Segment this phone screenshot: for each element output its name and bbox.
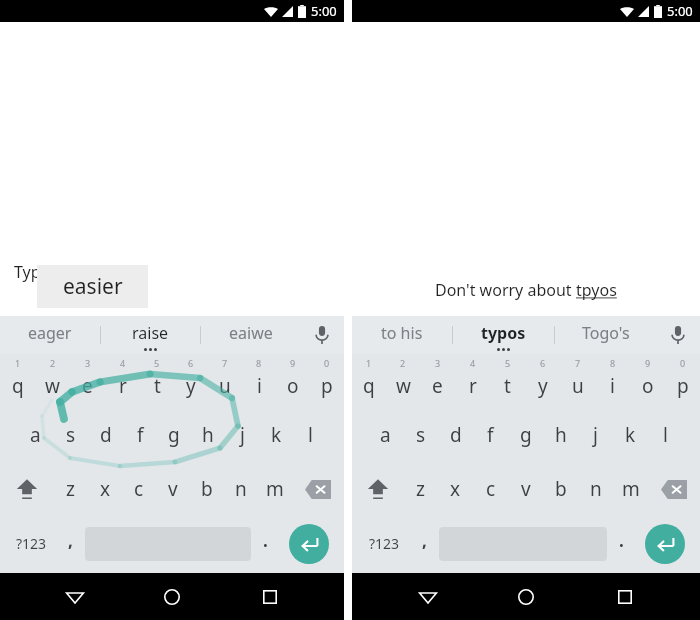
staticText: 2 xyxy=(400,357,406,369)
staticText: raise xyxy=(132,322,169,344)
staticText: j xyxy=(593,422,598,448)
button[interactable]: Delete xyxy=(292,462,344,516)
button[interactable]: , xyxy=(56,516,85,571)
button[interactable]: a xyxy=(18,408,53,462)
button[interactable]: 2 xyxy=(386,354,420,408)
button[interactable]: n xyxy=(224,462,258,516)
staticText: d xyxy=(450,422,462,448)
button[interactable]: 8 xyxy=(242,354,276,408)
staticText: eager xyxy=(28,322,72,344)
staticText: a xyxy=(380,422,391,448)
button[interactable]: c xyxy=(122,462,156,516)
staticText: p xyxy=(677,373,689,399)
button[interactable]: z xyxy=(53,462,88,516)
button[interactable]: l xyxy=(293,408,327,462)
button[interactable]: 1 xyxy=(0,354,35,408)
button[interactable]: Voice input xyxy=(300,316,344,354)
button[interactable]: Shift xyxy=(0,462,53,516)
button[interactable]: Home xyxy=(503,574,549,620)
button[interactable]: c xyxy=(473,462,508,516)
staticText: easier xyxy=(63,272,123,301)
button[interactable]: a xyxy=(368,408,403,462)
button[interactable]: 7 xyxy=(208,354,242,408)
button[interactable]: Recents xyxy=(247,574,293,620)
button[interactable]: f xyxy=(473,408,508,462)
button[interactable]: 4 xyxy=(105,354,140,408)
button[interactable]: raise xyxy=(101,316,200,354)
button[interactable]: v xyxy=(156,462,190,516)
button[interactable]: 3 xyxy=(70,354,105,408)
button[interactable]: x xyxy=(88,462,122,516)
button[interactable]: Togo's xyxy=(555,316,656,354)
staticText: f xyxy=(487,422,494,448)
button[interactable]: to his xyxy=(352,316,452,354)
button[interactable]: 4 xyxy=(455,354,490,408)
button[interactable]: 2 xyxy=(35,354,70,408)
button[interactable]: 1 xyxy=(352,354,386,408)
button[interactable]: s xyxy=(53,408,88,462)
staticText: h xyxy=(555,422,567,448)
button[interactable]: n xyxy=(578,462,613,516)
button[interactable]: 0 xyxy=(665,354,700,408)
button[interactable]: Back xyxy=(52,574,98,620)
button[interactable]: l xyxy=(648,408,683,462)
button[interactable]: z xyxy=(403,462,438,516)
button[interactable]: typos xyxy=(453,316,554,354)
button[interactable]: 6 xyxy=(174,354,208,408)
staticText: 6 xyxy=(540,357,546,369)
button[interactable]: m xyxy=(258,462,292,516)
button[interactable]: x xyxy=(438,462,473,516)
button[interactable]: g xyxy=(508,408,543,462)
button[interactable]: 9 xyxy=(276,354,310,408)
staticText: b xyxy=(555,476,567,502)
button[interactable]: Enter xyxy=(645,524,685,564)
button[interactable]: 5 xyxy=(490,354,525,408)
button[interactable]: d xyxy=(88,408,123,462)
staticText: u xyxy=(219,373,231,399)
button[interactable]: g xyxy=(157,408,191,462)
button[interactable]: ?123 xyxy=(358,516,410,571)
button[interactable]: , xyxy=(410,516,439,571)
button[interactable]: Home xyxy=(149,574,195,620)
button[interactable]: k xyxy=(259,408,293,462)
button[interactable]: j xyxy=(578,408,613,462)
button[interactable]: m xyxy=(613,462,648,516)
staticText: k xyxy=(625,422,636,448)
staticText: Togo's xyxy=(582,322,630,344)
staticText: l xyxy=(663,422,668,448)
button[interactable]: Back xyxy=(405,574,451,620)
button[interactable]: Enter xyxy=(289,524,329,564)
button[interactable]: h xyxy=(191,408,225,462)
button[interactable]: . xyxy=(607,516,636,571)
button[interactable]: s xyxy=(403,408,438,462)
button[interactable]: Shift xyxy=(352,462,403,516)
button[interactable]: k xyxy=(613,408,648,462)
button[interactable]: 8 xyxy=(595,354,630,408)
button[interactable]: 0 xyxy=(310,354,344,408)
button[interactable]: eaiwe xyxy=(201,316,300,354)
button[interactable]: Voice input xyxy=(656,316,700,354)
staticText: t xyxy=(504,373,511,399)
button[interactable]: j xyxy=(225,408,259,462)
button[interactable]: eager xyxy=(0,316,100,354)
button[interactable]: 6 xyxy=(525,354,560,408)
button[interactable]: h xyxy=(543,408,578,462)
button[interactable]: 9 xyxy=(630,354,665,408)
button[interactable]: 7 xyxy=(560,354,595,408)
button[interactable]: b xyxy=(543,462,578,516)
button[interactable]: 5 xyxy=(140,354,174,408)
button[interactable]: Recents xyxy=(602,574,648,620)
button[interactable]: v xyxy=(508,462,543,516)
button[interactable]: b xyxy=(190,462,224,516)
button[interactable]: . xyxy=(251,516,280,571)
button[interactable]: d xyxy=(438,408,473,462)
button[interactable]: f xyxy=(123,408,157,462)
button[interactable]: ?123 xyxy=(6,516,56,571)
staticText: Typing is xyxy=(14,261,81,283)
button[interactable]: 3 xyxy=(420,354,455,408)
button[interactable]: Delete xyxy=(648,462,700,516)
staticText: t xyxy=(154,373,161,399)
staticText: 5:00 xyxy=(667,2,693,20)
